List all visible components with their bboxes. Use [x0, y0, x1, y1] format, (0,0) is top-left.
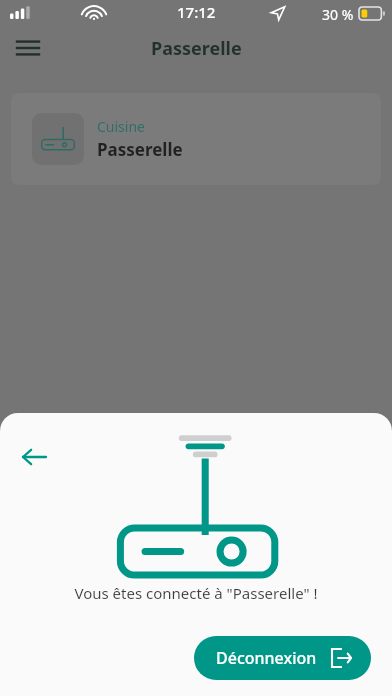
staticText: Passerelle [97, 138, 183, 161]
staticText: 17:12 [177, 2, 216, 22]
button[interactable]: Back [12, 435, 56, 479]
button[interactable]: Cuisine [11, 93, 381, 185]
button[interactable]: Menu [6, 26, 50, 70]
staticText: Vous êtes connecté à "Passerelle" ! [0, 583, 392, 603]
staticText: 30 % [322, 5, 354, 24]
button[interactable]: Déconnexion [194, 636, 371, 680]
staticText: Cuisine [97, 117, 145, 136]
staticText: Déconnexion [216, 647, 317, 669]
staticText: Passerelle [151, 36, 242, 61]
